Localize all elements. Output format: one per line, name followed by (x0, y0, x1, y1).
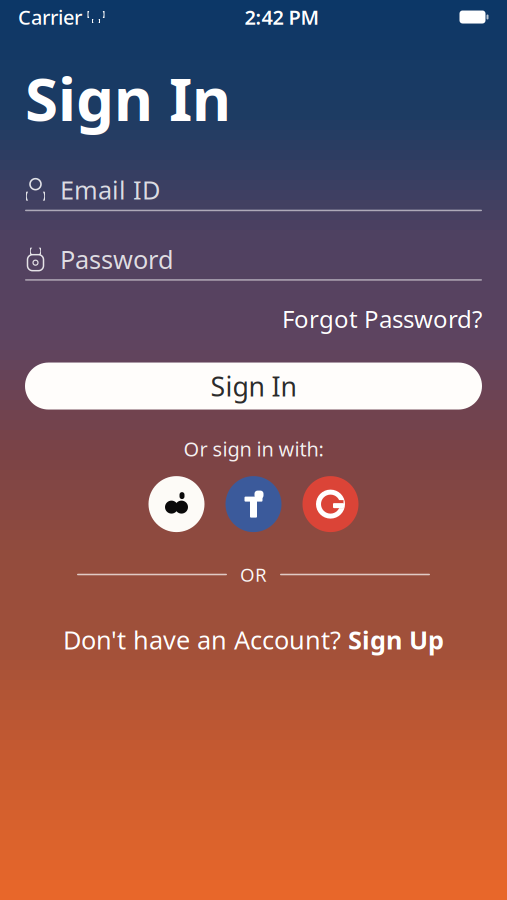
staticText: Don't have an Account? (63, 623, 348, 656)
staticText: Forgot Password? (282, 303, 482, 335)
button[interactable]: Sign In (25, 362, 482, 409)
staticText: Sign In (210, 368, 296, 404)
staticText: 2:42 PM (244, 4, 319, 30)
button[interactable]: Sign in with Google (302, 476, 358, 532)
staticText: Email ID (60, 173, 160, 206)
staticText: Or sign in with: (183, 435, 323, 462)
button[interactable]: Sign in with Facebook (225, 476, 281, 532)
button[interactable]: Sign in with Apple (148, 476, 204, 532)
staticText: Password (60, 242, 174, 276)
button[interactable]: Don't have an Account? (51, 615, 456, 664)
staticText: Sign Up (348, 623, 444, 656)
staticText: OR (240, 562, 267, 587)
staticText: Carrier (18, 4, 82, 30)
staticText: Sign In (25, 58, 231, 138)
button[interactable]: Forgot Password? (282, 297, 482, 341)
